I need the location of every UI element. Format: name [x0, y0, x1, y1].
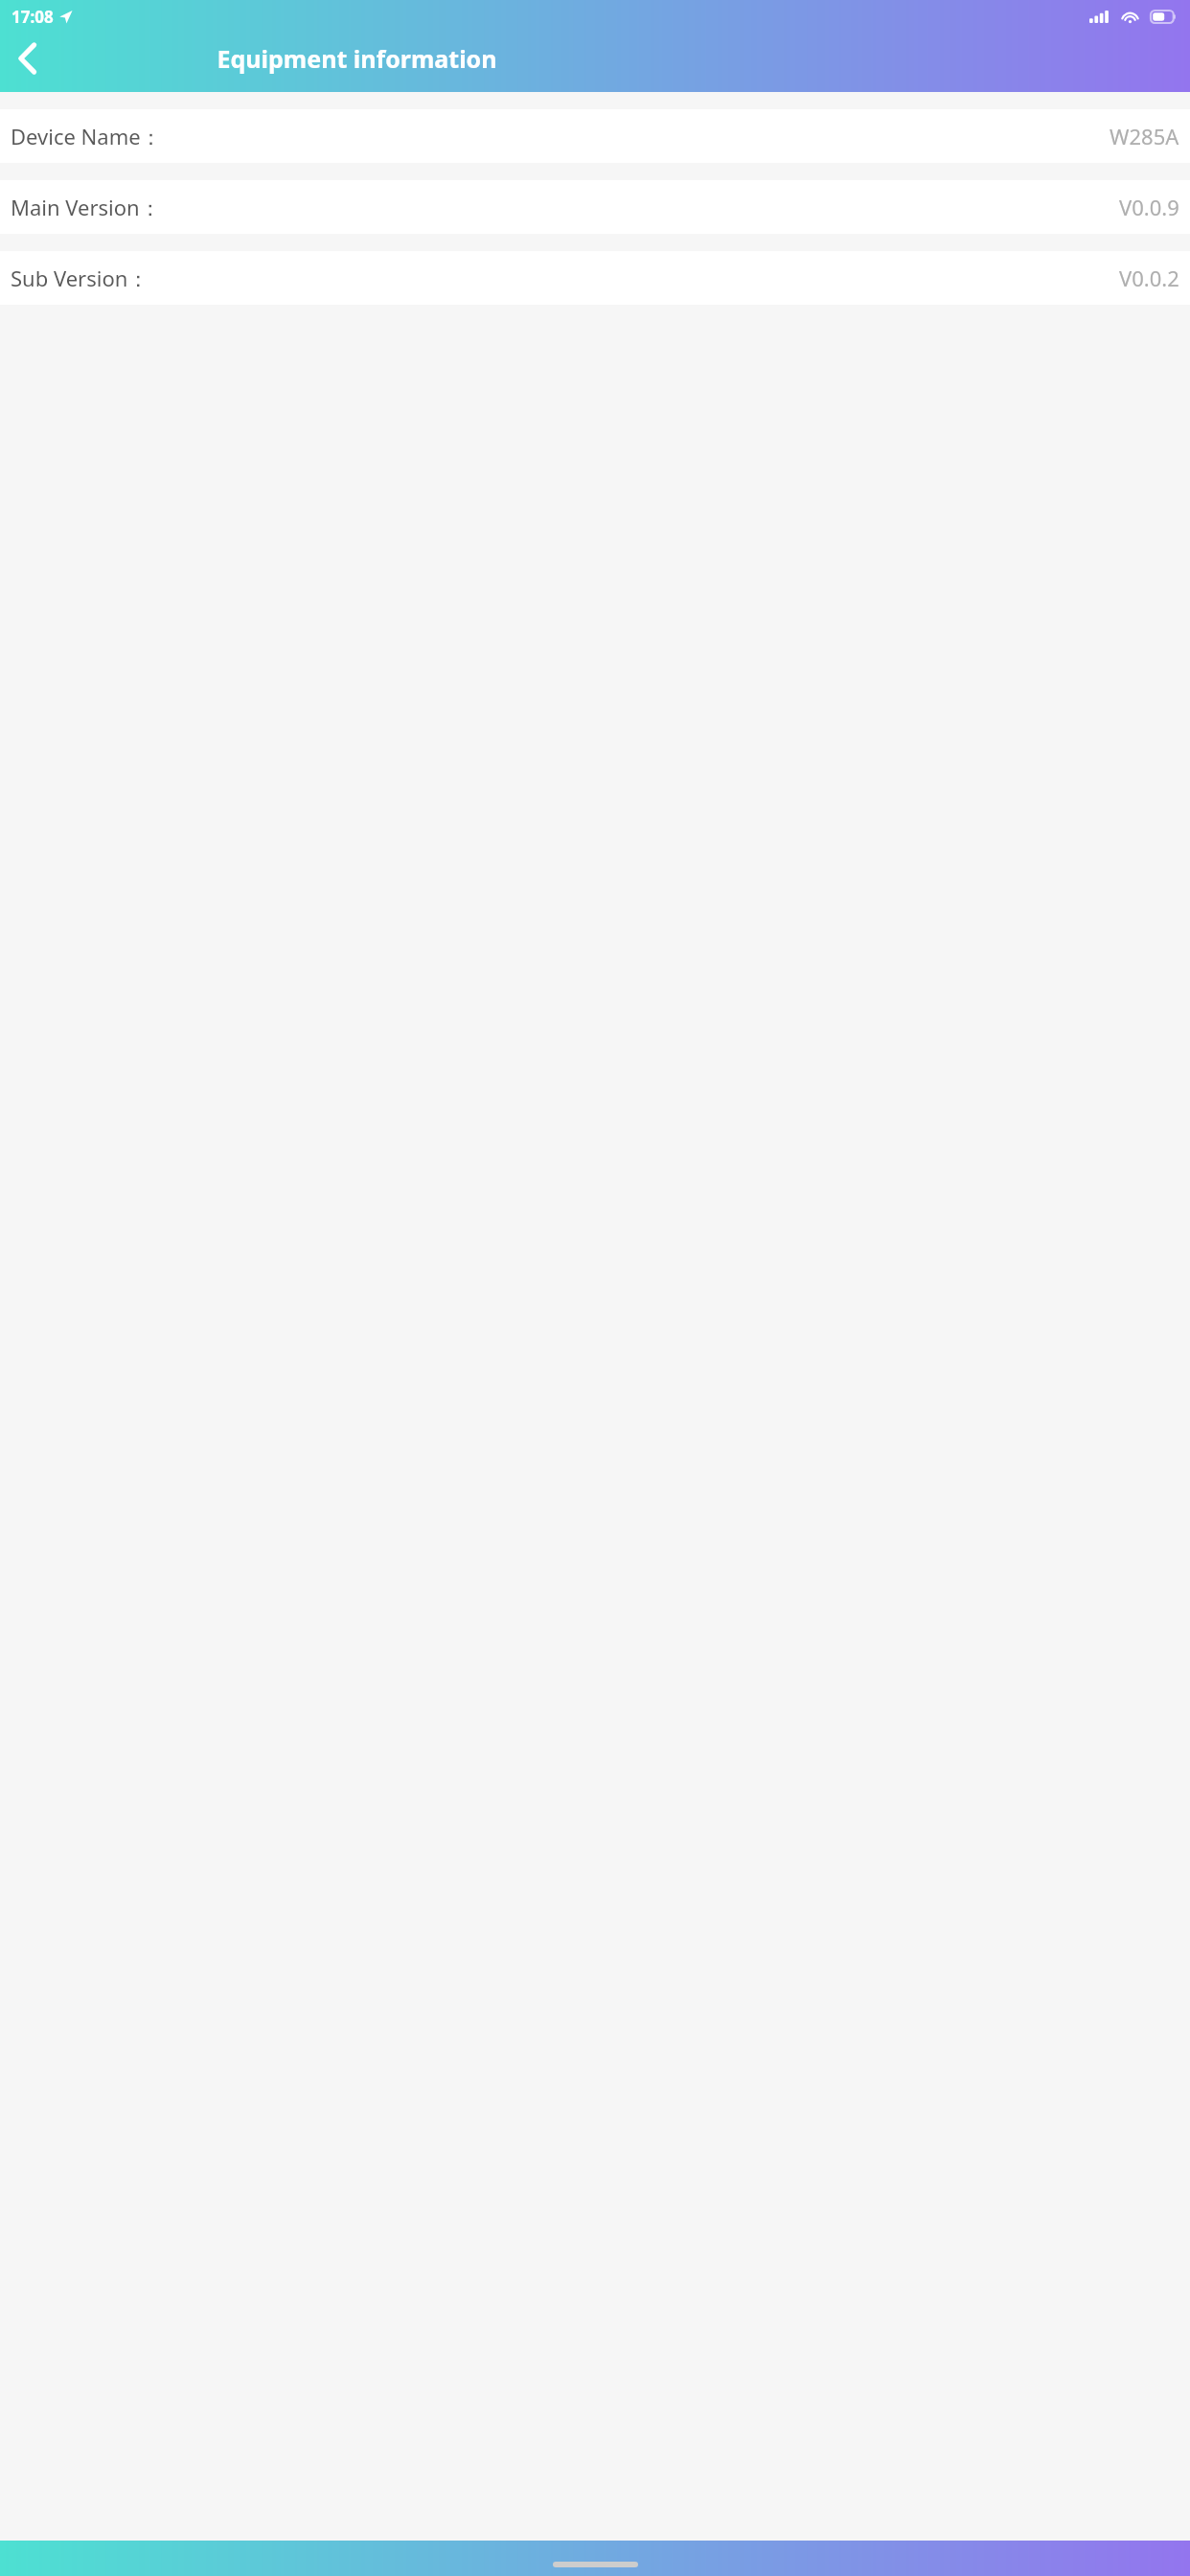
button[interactable]: Main Version： [0, 180, 1190, 234]
staticText: W285A [1110, 122, 1179, 150]
staticText: Sub Version： [11, 264, 149, 292]
staticText: Main Version： [11, 193, 161, 221]
staticText: Device Name： [11, 122, 162, 150]
staticText: V0.0.9 [1119, 193, 1179, 221]
staticText: 17:08 [11, 6, 54, 28]
button[interactable]: Sub Version： [0, 251, 1190, 305]
button[interactable]: Back [0, 32, 54, 85]
staticText: V0.0.2 [1119, 264, 1179, 292]
staticText: Equipment information [0, 42, 714, 75]
button[interactable]: Device Name： [0, 109, 1190, 163]
